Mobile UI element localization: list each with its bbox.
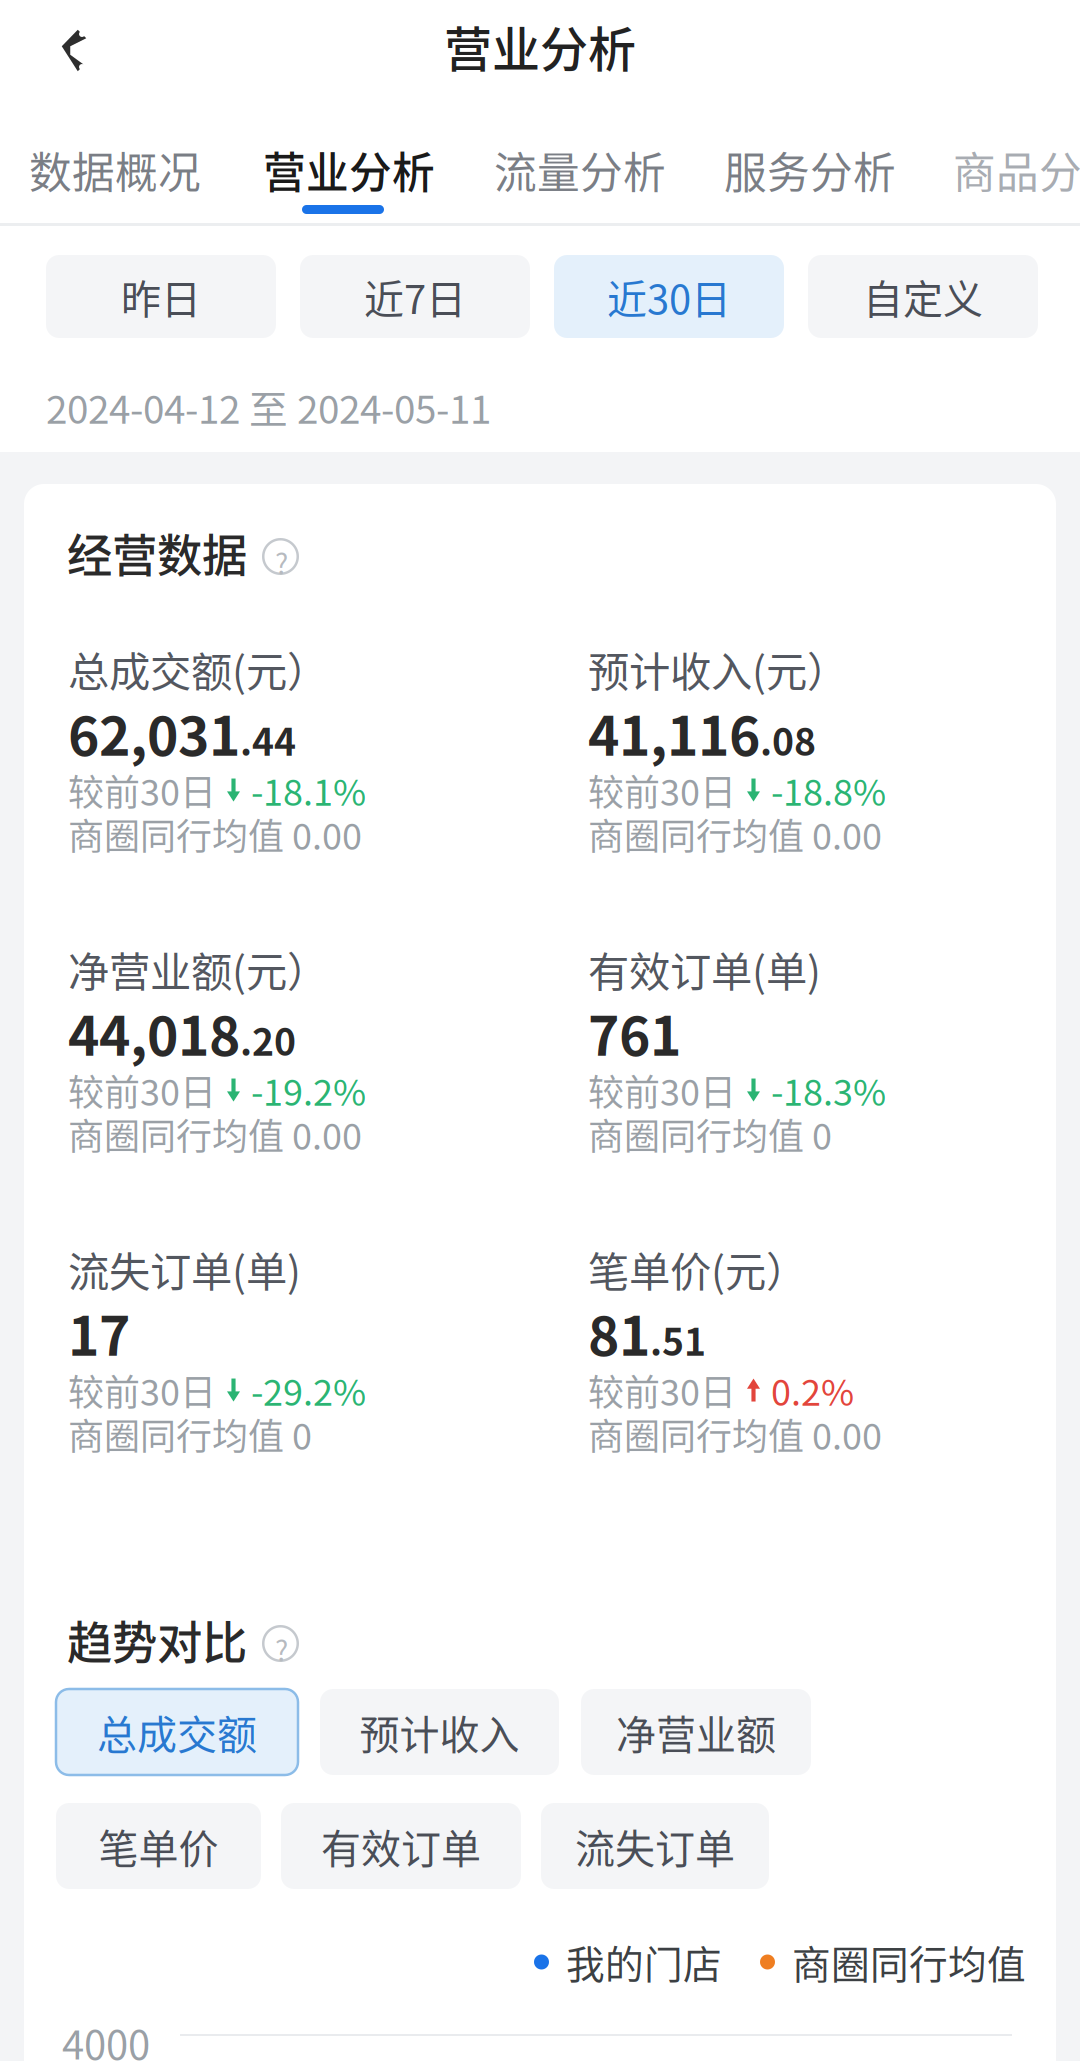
staticText: 2024-04-12 至 2024-05-11: [46, 379, 491, 435]
button[interactable]: 净营业额: [581, 1689, 811, 1775]
staticText: 预计收入(元）: [588, 639, 848, 699]
staticText: 较前30日: [68, 1364, 216, 1416]
staticText: 经营数据: [67, 520, 247, 586]
staticText: 有效订单(单): [588, 939, 821, 999]
staticText: 较前30日: [68, 1064, 216, 1116]
staticText: -19.2%: [251, 1064, 366, 1116]
staticText: 较前30日: [68, 764, 216, 816]
staticText: 81: [588, 1294, 650, 1371]
staticText: 较前30日: [588, 764, 736, 816]
button[interactable]: 流失订单: [541, 1803, 769, 1889]
staticText: ?: [275, 1629, 288, 1669]
staticText: 商圈同行均值 0.00: [588, 808, 882, 860]
button[interactable]: 近7日: [300, 255, 530, 338]
staticText: 较前30日: [588, 1064, 736, 1116]
staticText: 商圈同行均值 0: [68, 1408, 312, 1460]
button[interactable]: 总成交额: [56, 1689, 298, 1775]
staticText: 商圈同行均值 0: [588, 1108, 832, 1160]
staticText: 趋势对比: [67, 1607, 247, 1673]
staticText: .44: [240, 713, 296, 767]
staticText: .51: [650, 1313, 706, 1367]
staticText: 商圈同行均值 0.00: [68, 808, 362, 860]
staticText: 营业分析: [444, 11, 636, 81]
staticText: 4000: [62, 2013, 150, 2061]
staticText: 流量分析: [494, 139, 666, 201]
staticText: 数据概况: [29, 139, 201, 201]
button[interactable]: 有效订单: [281, 1803, 521, 1889]
staticText: 服务分析: [724, 139, 896, 201]
button[interactable]: 笔单价: [56, 1803, 261, 1889]
button[interactable]: 昨日: [46, 255, 276, 338]
button[interactable]: 预计收入: [320, 1689, 559, 1775]
button[interactable]: 数据概况: [29, 139, 195, 229]
button[interactable]: 商品分: [953, 139, 1080, 229]
button[interactable]: 近30日: [554, 255, 784, 338]
staticText: -18.1%: [251, 764, 366, 816]
staticText: 自定义: [863, 267, 983, 325]
staticText: -18.3%: [771, 1064, 886, 1116]
staticText: 总成交额(元）: [68, 639, 328, 699]
button[interactable]: 营业分析: [263, 139, 423, 229]
staticText: 商品分: [953, 139, 1080, 201]
staticText: 62,031: [68, 694, 240, 771]
staticText: 昨日: [121, 267, 201, 325]
staticText: 我的门店: [566, 1934, 722, 1990]
staticText: 较前30日: [588, 1364, 736, 1416]
button[interactable]: 服务分析: [724, 139, 884, 229]
staticText: 净营业额: [616, 1703, 776, 1761]
staticText: 笔单价: [98, 1817, 218, 1875]
staticText: 近30日: [607, 267, 731, 325]
staticText: -18.8%: [771, 764, 886, 816]
staticText: .08: [760, 713, 816, 767]
staticText: ?: [275, 542, 288, 582]
staticText: 预计收入: [359, 1703, 519, 1761]
button[interactable]: Back: [0, 0, 121, 100]
staticText: .20: [240, 1013, 296, 1067]
staticText: 总成交额: [97, 1703, 257, 1761]
staticText: 商圈同行均值 0.00: [588, 1408, 882, 1460]
staticText: 商圈同行均值: [792, 1934, 1026, 1990]
staticText: 笔单价(元）: [588, 1239, 807, 1299]
staticText: -29.2%: [251, 1364, 366, 1416]
staticText: 商圈同行均值 0.00: [68, 1108, 362, 1160]
staticText: 761: [588, 994, 681, 1071]
staticText: 近7日: [364, 267, 466, 325]
button[interactable]: 流量分析: [494, 139, 654, 229]
staticText: 流失订单(单): [68, 1239, 301, 1299]
staticText: 41,116: [588, 694, 760, 771]
staticText: 0.2%: [771, 1364, 854, 1416]
staticText: 17: [68, 1294, 130, 1371]
button[interactable]: 自定义: [808, 255, 1038, 338]
staticText: 44,018: [68, 994, 240, 1071]
staticText: 流失订单: [575, 1817, 735, 1875]
staticText: 营业分析: [263, 139, 435, 201]
staticText: 净营业额(元）: [68, 939, 328, 999]
staticText: 有效订单: [321, 1817, 481, 1875]
